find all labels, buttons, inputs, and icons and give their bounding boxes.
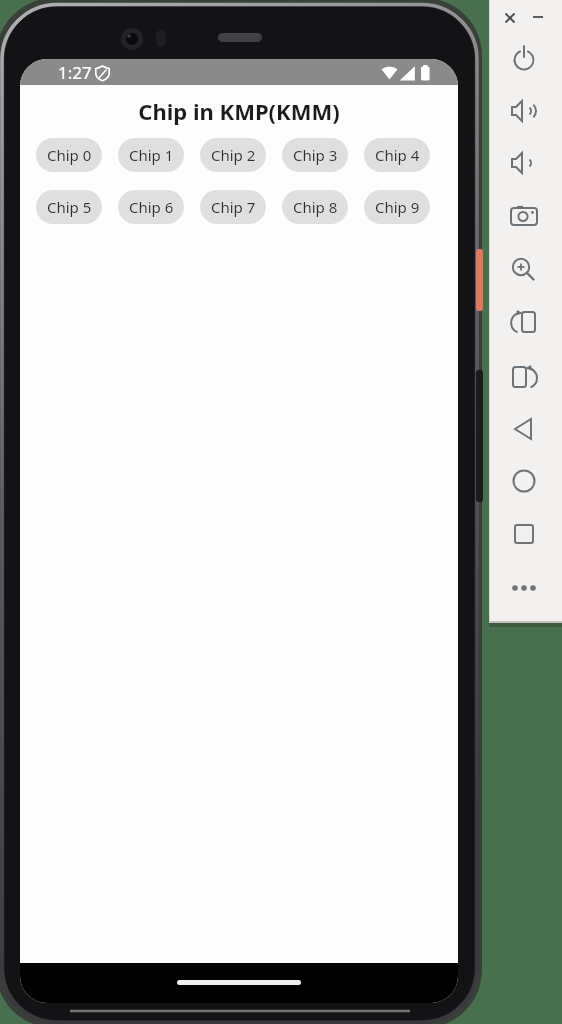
button[interactable]: Chip 5 (36, 190, 102, 224)
staticText: Chip 9 (375, 197, 420, 217)
staticText: Chip 7 (211, 197, 256, 217)
button[interactable] (506, 198, 542, 234)
button[interactable] (506, 93, 542, 129)
staticText: Chip 0 (47, 145, 92, 165)
button[interactable]: Chip 3 (282, 138, 348, 172)
staticText: Chip 1 (129, 145, 174, 165)
button[interactable] (506, 463, 542, 499)
button[interactable] (506, 411, 542, 447)
staticText: Chip 3 (293, 145, 338, 165)
staticText: Chip 8 (293, 197, 338, 217)
staticText: 1:27 (58, 61, 92, 84)
button[interactable]: Chip 6 (118, 190, 184, 224)
button[interactable]: Chip 2 (200, 138, 266, 172)
button[interactable] (530, 9, 546, 25)
staticText: Chip 2 (211, 145, 256, 165)
button[interactable]: Chip 4 (364, 138, 430, 172)
button[interactable] (177, 980, 301, 985)
staticText: Chip 5 (47, 197, 92, 217)
button[interactable] (506, 304, 542, 340)
button[interactable]: Chip 0 (36, 138, 102, 172)
button[interactable]: Chip 1 (118, 138, 184, 172)
button[interactable] (506, 252, 542, 288)
button[interactable]: Chip 9 (364, 190, 430, 224)
staticText: Chip in KMP(KMM) (20, 96, 458, 126)
button[interactable]: Chip 8 (282, 190, 348, 224)
staticText: Chip 4 (375, 145, 420, 165)
button[interactable] (506, 516, 542, 552)
staticText: Chip 6 (129, 197, 174, 217)
button[interactable] (502, 10, 518, 26)
button[interactable] (506, 359, 542, 395)
button[interactable] (506, 40, 542, 76)
button[interactable] (506, 570, 542, 606)
button[interactable]: Chip 7 (200, 190, 266, 224)
button[interactable] (506, 145, 542, 181)
